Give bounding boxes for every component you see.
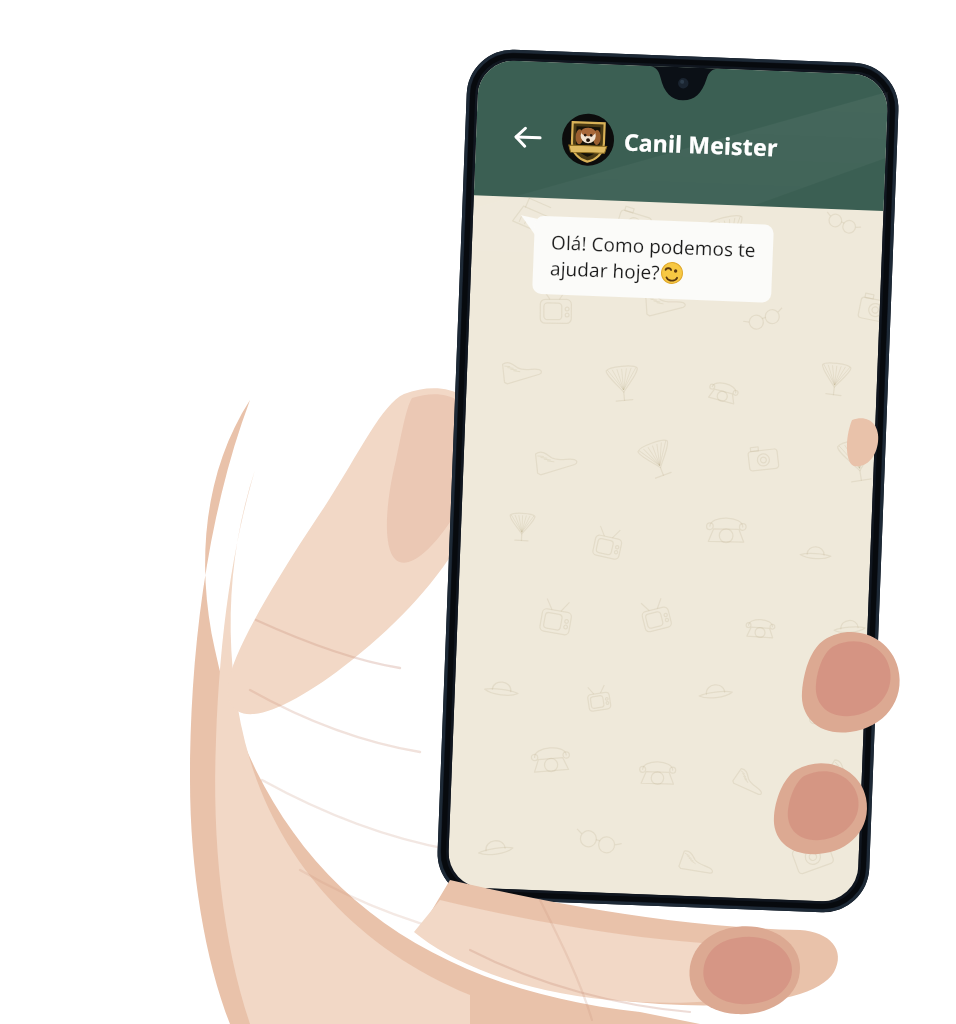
button[interactable]: WhatsApp chat with Canil Meister — [0, 0, 956, 1024]
